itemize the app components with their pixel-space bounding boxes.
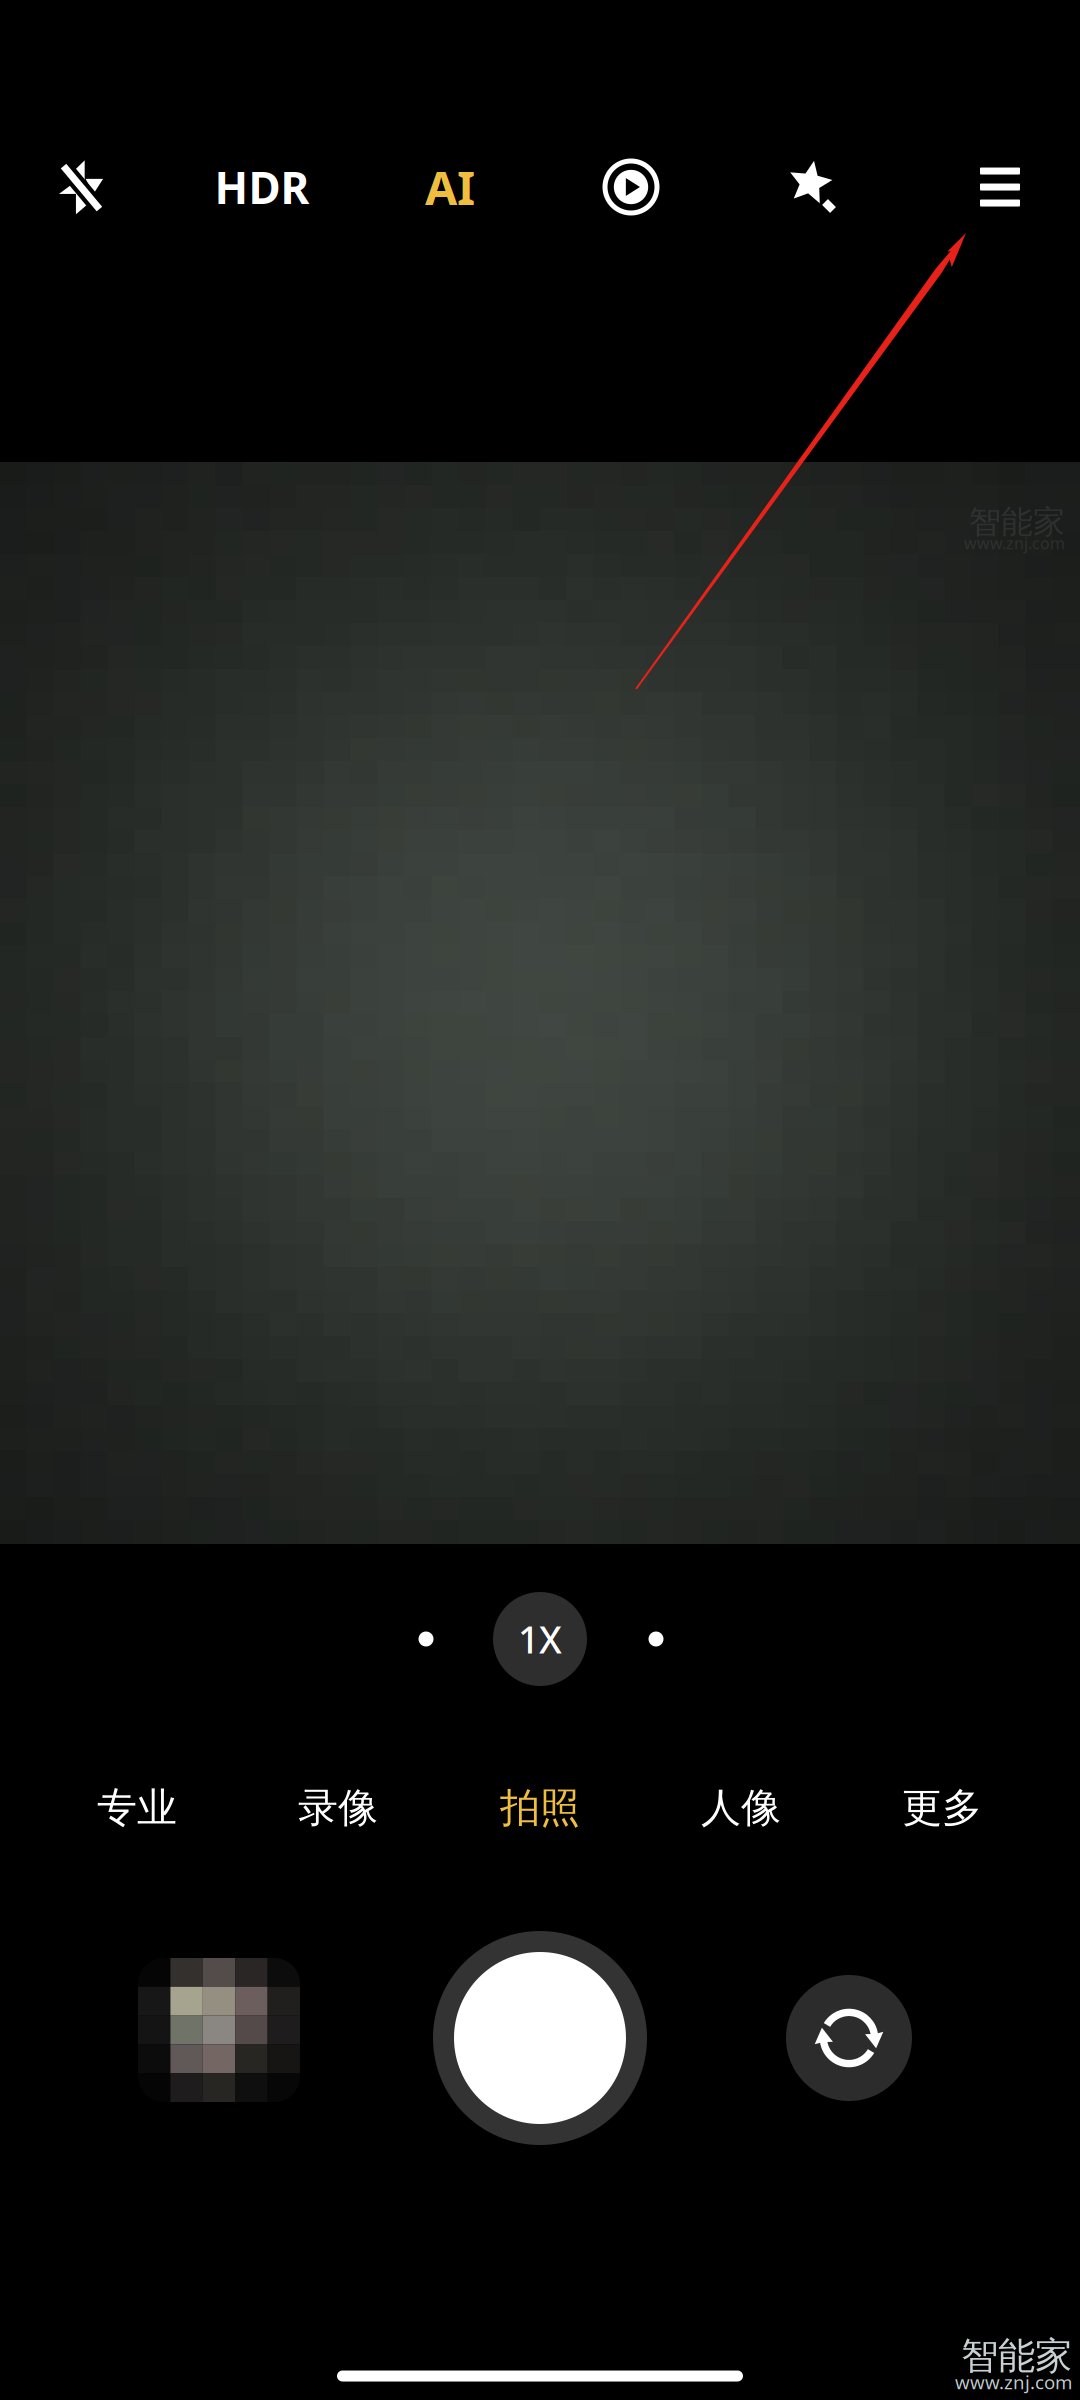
staticText: 智能家 (961, 2333, 1072, 2379)
staticText: 录像 (298, 1783, 378, 1832)
button[interactable]: 录像 (243, 1760, 433, 1856)
button[interactable]: HDR (177, 127, 347, 247)
staticText: www.znj.com (964, 532, 1065, 554)
button[interactable]: Beauty (754, 127, 874, 247)
staticText: 1X (518, 1614, 562, 1664)
staticText: HDR (214, 158, 309, 216)
button[interactable]: Switch camera (786, 1975, 912, 2101)
button[interactable]: Take photo (433, 1931, 647, 2145)
staticText: 专业 (97, 1783, 177, 1832)
staticText: 更多 (902, 1783, 982, 1832)
button[interactable]: AI (385, 127, 515, 247)
staticText: AI (425, 156, 475, 218)
button[interactable]: Gallery (134, 1954, 304, 2106)
button[interactable]: 拍照 (445, 1760, 635, 1856)
button[interactable]: 人像 (646, 1760, 836, 1856)
button[interactable]: 专业 (42, 1760, 232, 1856)
button[interactable]: 1X (493, 1592, 587, 1686)
button[interactable]: Flash off (21, 127, 141, 247)
button[interactable]: Motion photo (571, 127, 691, 247)
staticText: www.znj.com (955, 2370, 1072, 2394)
button[interactable]: 更多 (847, 1760, 1037, 1856)
staticText: 智能家 (969, 502, 1065, 542)
staticText: 拍照 (500, 1783, 580, 1832)
staticText: 人像 (701, 1783, 781, 1832)
button[interactable]: More settings (940, 127, 1060, 247)
